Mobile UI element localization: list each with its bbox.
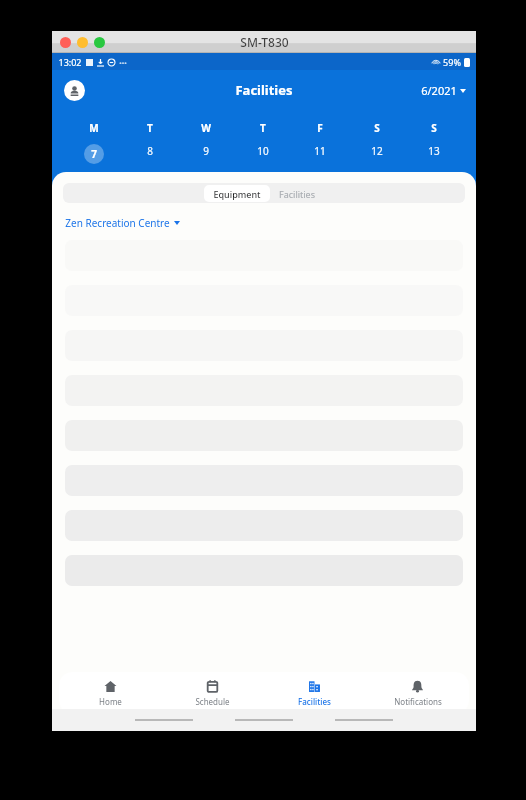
button[interactable]: Equipment xyxy=(213,185,261,202)
button[interactable]: 8 xyxy=(122,144,178,158)
staticText: T xyxy=(147,121,153,135)
staticText: Home xyxy=(99,696,122,707)
staticText: 12 xyxy=(371,144,383,158)
button[interactable]: Home xyxy=(59,672,161,714)
staticText: F xyxy=(317,121,323,135)
staticText: 13:02 xyxy=(58,56,82,68)
staticText: S xyxy=(431,121,437,135)
button[interactable]: Notifications xyxy=(366,672,469,714)
staticText: S xyxy=(374,121,380,135)
button[interactable]: Zen Recreation Centre xyxy=(65,216,180,230)
button[interactable]: Facilities xyxy=(279,185,315,202)
staticText: Equipment xyxy=(213,188,261,200)
staticText: SM-T830 xyxy=(240,34,289,50)
button[interactable]: Profile xyxy=(64,80,85,101)
button[interactable]: 10 xyxy=(234,144,291,158)
staticText: 9 xyxy=(203,144,209,158)
staticText: 13 xyxy=(428,144,440,158)
staticText: 11 xyxy=(314,144,326,158)
staticText: 7 xyxy=(91,147,97,161)
button[interactable]: Schedule xyxy=(161,672,263,714)
staticText: 59% xyxy=(443,56,461,68)
button[interactable]: 9 xyxy=(178,144,234,158)
button[interactable]: 11 xyxy=(291,144,348,158)
button[interactable]: 6/2021 xyxy=(421,83,466,98)
staticText: T xyxy=(260,121,266,135)
staticText: 8 xyxy=(147,144,153,158)
staticText: Facilities xyxy=(279,188,315,200)
button[interactable]: 13 xyxy=(405,144,462,158)
button[interactable]: 7 xyxy=(66,144,122,164)
staticText: 6/2021 xyxy=(421,83,457,98)
staticText: Facilities xyxy=(298,696,331,707)
button[interactable]: 12 xyxy=(348,144,405,158)
staticText: Schedule xyxy=(195,696,230,707)
staticText: M xyxy=(89,121,99,135)
button[interactable]: Facilities xyxy=(263,672,366,714)
staticText: ··· xyxy=(119,56,127,68)
staticText: Facilities xyxy=(235,81,293,99)
staticText: 10 xyxy=(257,144,269,158)
staticText: W xyxy=(201,121,211,135)
staticText: Zen Recreation Centre xyxy=(65,216,170,230)
staticText: Notifications xyxy=(394,696,442,707)
